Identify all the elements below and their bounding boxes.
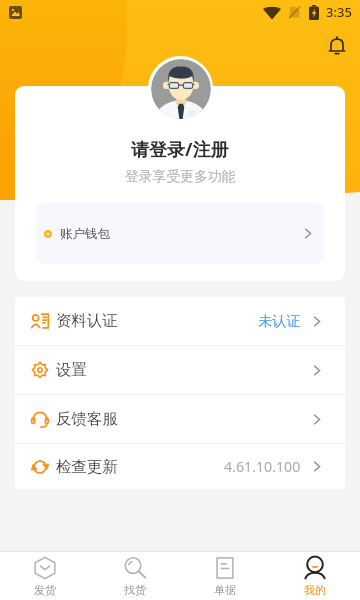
button[interactable]: 设置 (15, 346, 345, 394)
staticText: 找货 (124, 583, 146, 597)
staticText: 4.61.10.100 (224, 457, 301, 476)
staticText: 设置 (56, 360, 87, 380)
staticText: 反馈客服 (56, 409, 118, 429)
button[interactable]: 资料认证 (15, 297, 345, 345)
staticText: 资料认证 (56, 311, 118, 331)
staticText: 3:35 (326, 3, 352, 21)
staticText: 登录享受更多功能 (125, 168, 236, 185)
button[interactable]: 找货 (90, 552, 180, 600)
button[interactable]: 账户钱包 (36, 203, 324, 264)
button[interactable]: 我的 (270, 552, 360, 600)
button[interactable]: 反馈客服 (15, 395, 345, 443)
staticText: 发货 (34, 583, 56, 597)
button[interactable]: 检查更新 (15, 444, 345, 489)
button[interactable]: 单据 (180, 552, 270, 600)
staticText: 账户钱包 (60, 226, 110, 242)
staticText: 我的 (304, 583, 326, 597)
button[interactable]: Avatar (148, 56, 213, 121)
staticText: 检查更新 (56, 457, 118, 477)
button[interactable]: 发货 (0, 552, 90, 600)
staticText: 未认证 (258, 312, 301, 330)
staticText: 单据 (214, 583, 236, 597)
button[interactable]: Notifications (321, 30, 353, 62)
staticText: 请登录/注册 (131, 137, 229, 162)
